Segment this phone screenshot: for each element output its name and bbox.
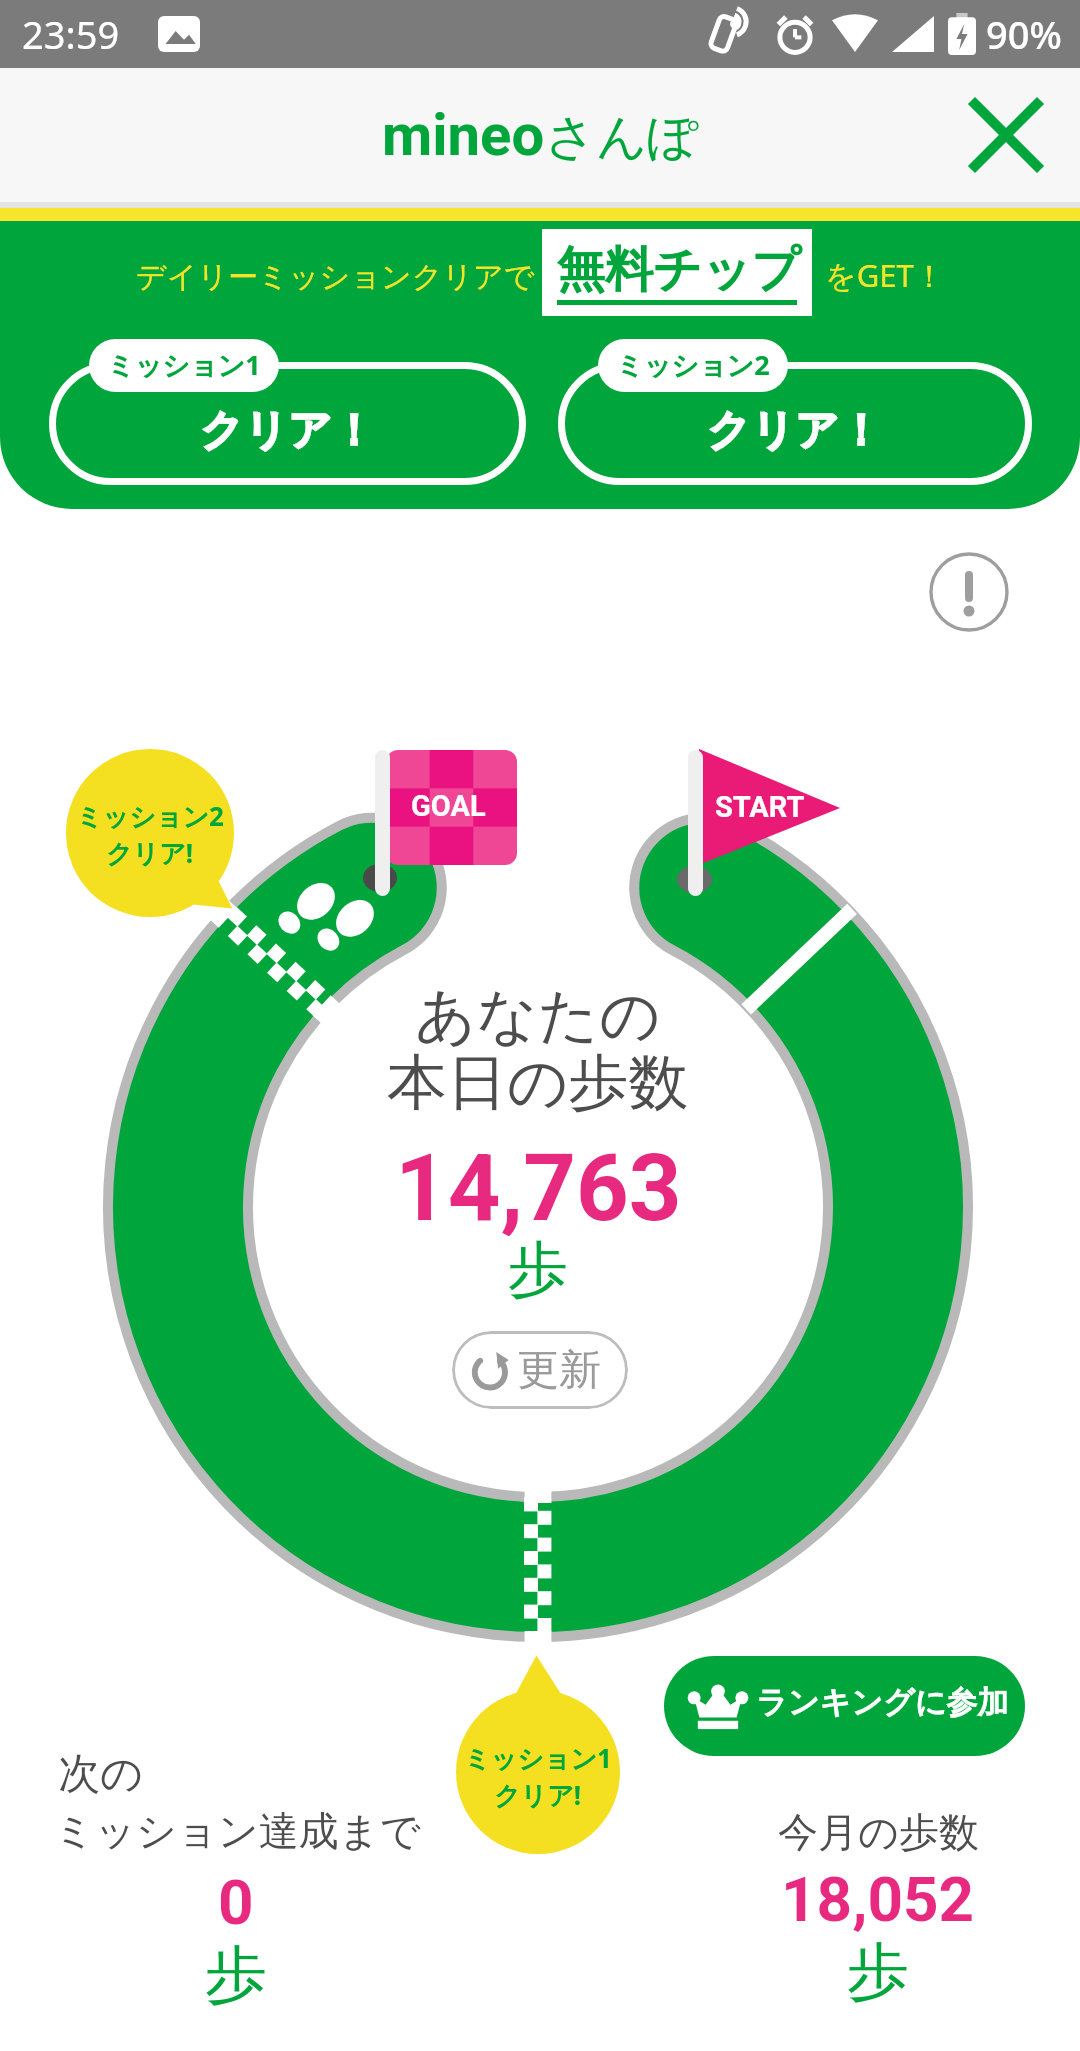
- staticText: クリア!: [106, 835, 194, 871]
- button[interactable]: クリア！: [49, 339, 526, 485]
- staticText: 18,052: [781, 1863, 975, 1936]
- staticText: クリア！: [200, 404, 376, 458]
- staticText: mineo: [382, 101, 545, 169]
- staticText: 更新: [517, 1344, 601, 1397]
- staticText: あなたの: [415, 978, 661, 1054]
- staticText: ミッション1: [107, 346, 261, 383]
- staticText: クリア！: [707, 404, 883, 458]
- staticText: 歩: [205, 1936, 267, 2014]
- staticText: デイリーミッションクリアで: [136, 258, 535, 296]
- staticText: 今月の歩数: [778, 1807, 979, 1857]
- staticText: ミッション達成まで: [54, 1806, 421, 1856]
- staticText: 無料チップ: [557, 240, 801, 300]
- staticText: ミッション2: [616, 346, 770, 383]
- staticText: GOAL: [411, 789, 486, 823]
- staticText: 90%: [986, 8, 1062, 60]
- staticText: 歩: [847, 1933, 909, 2011]
- button[interactable]: 更新: [452, 1331, 628, 1409]
- staticText: 本日の歩数: [387, 1045, 689, 1121]
- staticText: さんぽ: [545, 106, 699, 169]
- button[interactable]: Close: [954, 83, 1058, 187]
- staticText: ミッション1: [464, 1740, 612, 1776]
- staticText: 14,763: [395, 1135, 682, 1243]
- staticText: 次の: [58, 1748, 143, 1801]
- staticText: 歩: [508, 1232, 568, 1308]
- staticText: ランキングに参加: [756, 1683, 1009, 1722]
- staticText: クリア!: [494, 1777, 582, 1813]
- staticText: をGET！: [825, 254, 945, 296]
- button[interactable]: クリア！: [558, 339, 1032, 485]
- button[interactable]: ランキングに参加: [664, 1656, 1025, 1756]
- staticText: ミッション2: [76, 798, 224, 834]
- staticText: 0: [218, 1866, 254, 1939]
- staticText: 23:59: [22, 8, 120, 60]
- button[interactable]: Information: [929, 552, 1009, 632]
- staticText: START: [715, 790, 805, 824]
